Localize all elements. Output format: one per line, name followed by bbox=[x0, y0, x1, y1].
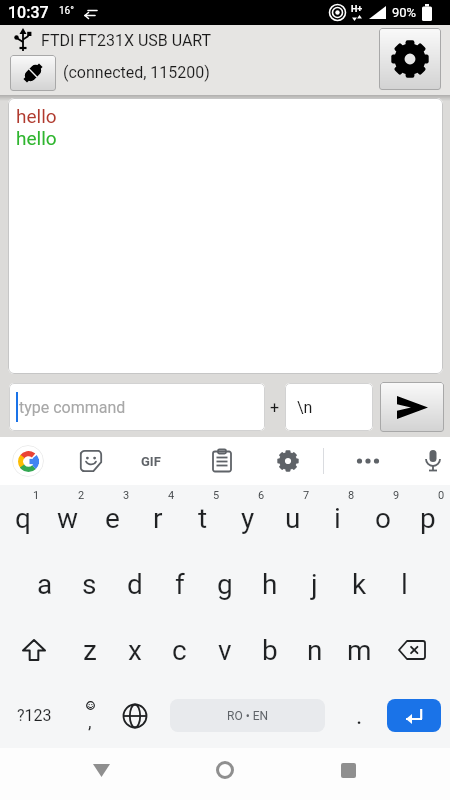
button[interactable]: c bbox=[157, 617, 202, 683]
button[interactable] bbox=[10, 55, 56, 91]
staticText: 5 bbox=[213, 489, 220, 502]
button[interactable] bbox=[379, 28, 441, 90]
button[interactable] bbox=[380, 382, 444, 432]
button[interactable]: h bbox=[247, 551, 292, 617]
staticText: o bbox=[375, 502, 391, 535]
button[interactable] bbox=[271, 437, 305, 485]
button[interactable]: n bbox=[292, 617, 337, 683]
staticText: z bbox=[83, 634, 97, 667]
staticText: r bbox=[153, 502, 163, 535]
button[interactable]: 9 bbox=[360, 485, 405, 551]
button[interactable]: 1 bbox=[0, 485, 45, 551]
button[interactable]: 2 bbox=[45, 485, 90, 551]
button[interactable]: x bbox=[112, 617, 157, 683]
staticText: 6 bbox=[258, 489, 265, 502]
staticText: , bbox=[88, 711, 92, 732]
staticText: 8 bbox=[348, 489, 355, 502]
button[interactable] bbox=[387, 683, 441, 748]
button[interactable]: f bbox=[157, 551, 202, 617]
staticText: GIF bbox=[141, 454, 161, 469]
button[interactable]: d bbox=[112, 551, 157, 617]
staticText: k bbox=[352, 568, 367, 601]
button[interactable]: b bbox=[247, 617, 292, 683]
staticText: f bbox=[175, 568, 185, 601]
staticText: 10:37 bbox=[8, 3, 49, 22]
button[interactable] bbox=[351, 437, 385, 485]
button[interactable]: 3 bbox=[90, 485, 135, 551]
button[interactable]: v bbox=[202, 617, 247, 683]
staticText: 3 bbox=[123, 489, 130, 502]
staticText: q bbox=[15, 502, 31, 535]
staticText: h bbox=[262, 568, 278, 601]
staticText: RO • EN bbox=[227, 709, 269, 723]
button[interactable]: 7 bbox=[270, 485, 315, 551]
button[interactable] bbox=[0, 617, 67, 683]
staticText: 7 bbox=[303, 489, 310, 502]
staticText: . bbox=[356, 702, 363, 730]
button[interactable]: 5 bbox=[180, 485, 225, 551]
button[interactable]: z bbox=[67, 617, 112, 683]
staticText: p bbox=[420, 502, 436, 535]
button[interactable]: 0 bbox=[405, 485, 450, 551]
staticText: l bbox=[401, 568, 408, 601]
staticText: w bbox=[57, 502, 79, 535]
button[interactable]: l bbox=[382, 551, 427, 617]
button[interactable] bbox=[205, 437, 239, 485]
button[interactable] bbox=[112, 683, 158, 748]
staticText: 9 bbox=[393, 489, 400, 502]
button[interactable]: a bbox=[22, 551, 67, 617]
staticText: u bbox=[285, 502, 301, 535]
staticText: n bbox=[307, 634, 323, 667]
staticText: 16° bbox=[59, 5, 74, 17]
staticText: 0 bbox=[438, 489, 445, 502]
staticText: hello bbox=[16, 127, 57, 149]
button[interactable] bbox=[12, 445, 44, 477]
staticText: b bbox=[262, 634, 278, 667]
button[interactable]: \n bbox=[285, 383, 373, 431]
button[interactable]: 4 bbox=[135, 485, 180, 551]
staticText: d bbox=[127, 568, 143, 601]
button[interactable]: 8 bbox=[315, 485, 360, 551]
staticText: 90% bbox=[392, 5, 417, 20]
staticText: hello bbox=[16, 105, 57, 127]
staticText: 1 bbox=[33, 489, 40, 502]
staticText: s bbox=[82, 568, 97, 601]
staticText: m bbox=[347, 634, 372, 667]
button[interactable] bbox=[203, 744, 247, 796]
staticText: \n bbox=[297, 398, 313, 417]
staticText: j bbox=[311, 568, 318, 601]
staticText: t bbox=[198, 502, 208, 535]
button[interactable]: GIF bbox=[134, 437, 168, 485]
staticText: v bbox=[218, 634, 232, 667]
staticText: e bbox=[105, 502, 120, 535]
button[interactable]: RO • EN bbox=[170, 683, 325, 748]
staticText: ?123 bbox=[17, 706, 52, 725]
staticText: a bbox=[37, 568, 53, 601]
button[interactable] bbox=[326, 744, 370, 796]
button[interactable]: m bbox=[337, 617, 382, 683]
staticText: x bbox=[128, 634, 142, 667]
staticText: y bbox=[241, 502, 255, 535]
button[interactable] bbox=[416, 437, 450, 485]
button[interactable] bbox=[74, 437, 108, 485]
staticText: g bbox=[217, 568, 233, 601]
button[interactable]: , bbox=[68, 683, 112, 748]
button[interactable]: k bbox=[337, 551, 382, 617]
staticText: + bbox=[270, 398, 280, 417]
staticText: type command bbox=[19, 398, 126, 417]
button[interactable] bbox=[79, 744, 123, 796]
staticText: 2 bbox=[78, 489, 85, 502]
button[interactable]: j bbox=[292, 551, 337, 617]
staticText: c bbox=[172, 634, 187, 667]
staticText: i bbox=[334, 502, 341, 535]
button[interactable]: type command bbox=[9, 383, 265, 431]
staticText: FTDI FT231X USB UART bbox=[41, 31, 212, 50]
button[interactable]: . bbox=[337, 683, 382, 748]
staticText: 4 bbox=[168, 489, 175, 502]
button[interactable] bbox=[382, 617, 442, 683]
staticText: H+ bbox=[351, 4, 363, 15]
button[interactable]: g bbox=[202, 551, 247, 617]
button[interactable]: ?123 bbox=[0, 683, 68, 748]
button[interactable]: s bbox=[67, 551, 112, 617]
button[interactable]: 6 bbox=[225, 485, 270, 551]
